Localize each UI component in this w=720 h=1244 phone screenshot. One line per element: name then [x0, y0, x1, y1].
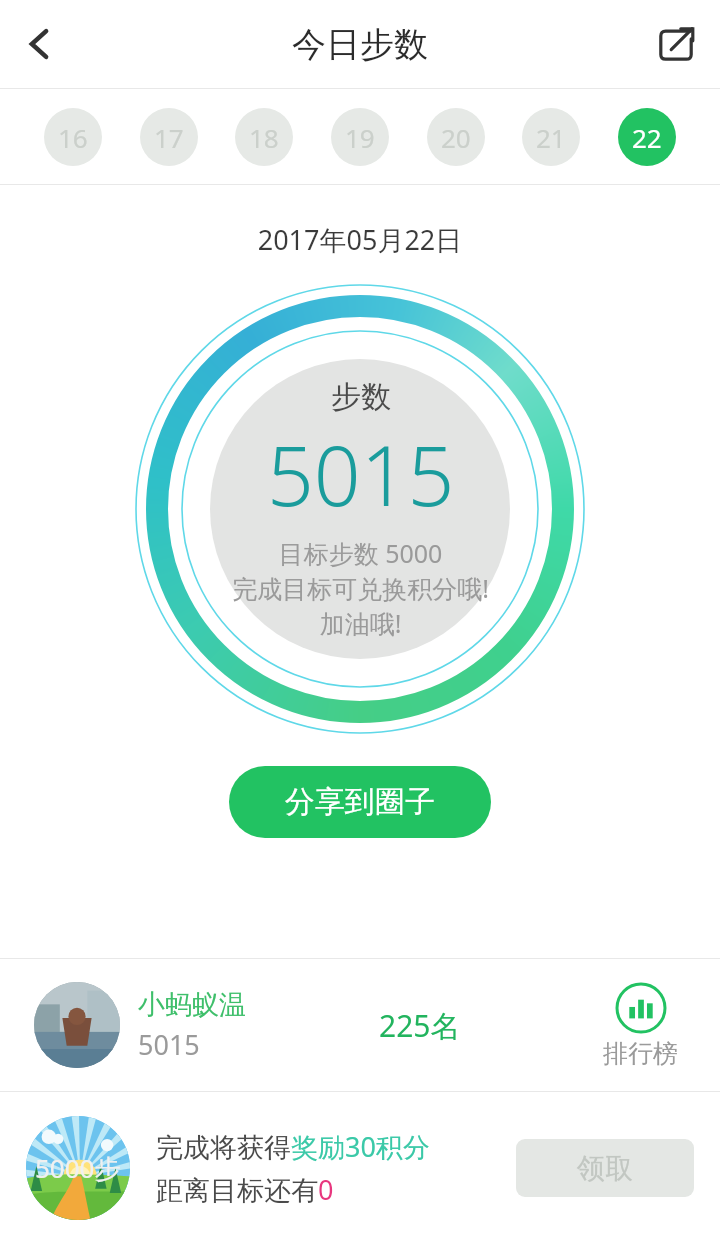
staticText: 步数 [331, 378, 391, 416]
staticText: 2017年05月22日 [0, 221, 720, 258]
staticText: 21 [536, 120, 566, 155]
staticText: 225名 [379, 1005, 461, 1046]
staticText: 领取 [577, 1151, 633, 1186]
button[interactable]: Back [8, 12, 72, 76]
button[interactable]: Share [644, 12, 708, 76]
staticText: 5000步 [35, 1150, 121, 1186]
staticText: 19 [345, 120, 375, 155]
button[interactable]: 17 [140, 108, 198, 166]
staticText: 22 [632, 120, 662, 155]
button[interactable]: 领取 [516, 1139, 694, 1197]
staticText: 20 [441, 120, 471, 155]
staticText: 小蚂蚁温 [138, 988, 246, 1022]
staticText: 今日步数 [292, 23, 428, 66]
staticText: 5015 [267, 418, 455, 530]
staticText: 17 [154, 120, 184, 155]
staticText: 16 [58, 120, 88, 155]
button[interactable]: 小蚂蚁温 [0, 959, 720, 1091]
staticText: 分享到圈子 [285, 783, 435, 821]
button[interactable]: 18 [235, 108, 293, 166]
button[interactable]: 16 [44, 108, 102, 166]
staticText: 距离目标还有0 [156, 1171, 334, 1208]
staticText: 目标步数 5000 完成目标可兑换积分哦! 加油哦! [232, 536, 489, 640]
staticText: 排行榜 [603, 1038, 678, 1069]
button[interactable]: 22 [618, 108, 676, 166]
staticText: 5015 [138, 1026, 200, 1063]
staticText: 18 [249, 120, 279, 155]
button[interactable]: 排行榜 [594, 982, 686, 1069]
button[interactable]: 20 [427, 108, 485, 166]
staticText: 完成将获得奖励30积分 [156, 1128, 430, 1165]
button[interactable]: 分享到圈子 [229, 766, 491, 838]
button[interactable]: 19 [331, 108, 389, 166]
button[interactable]: 21 [522, 108, 580, 166]
